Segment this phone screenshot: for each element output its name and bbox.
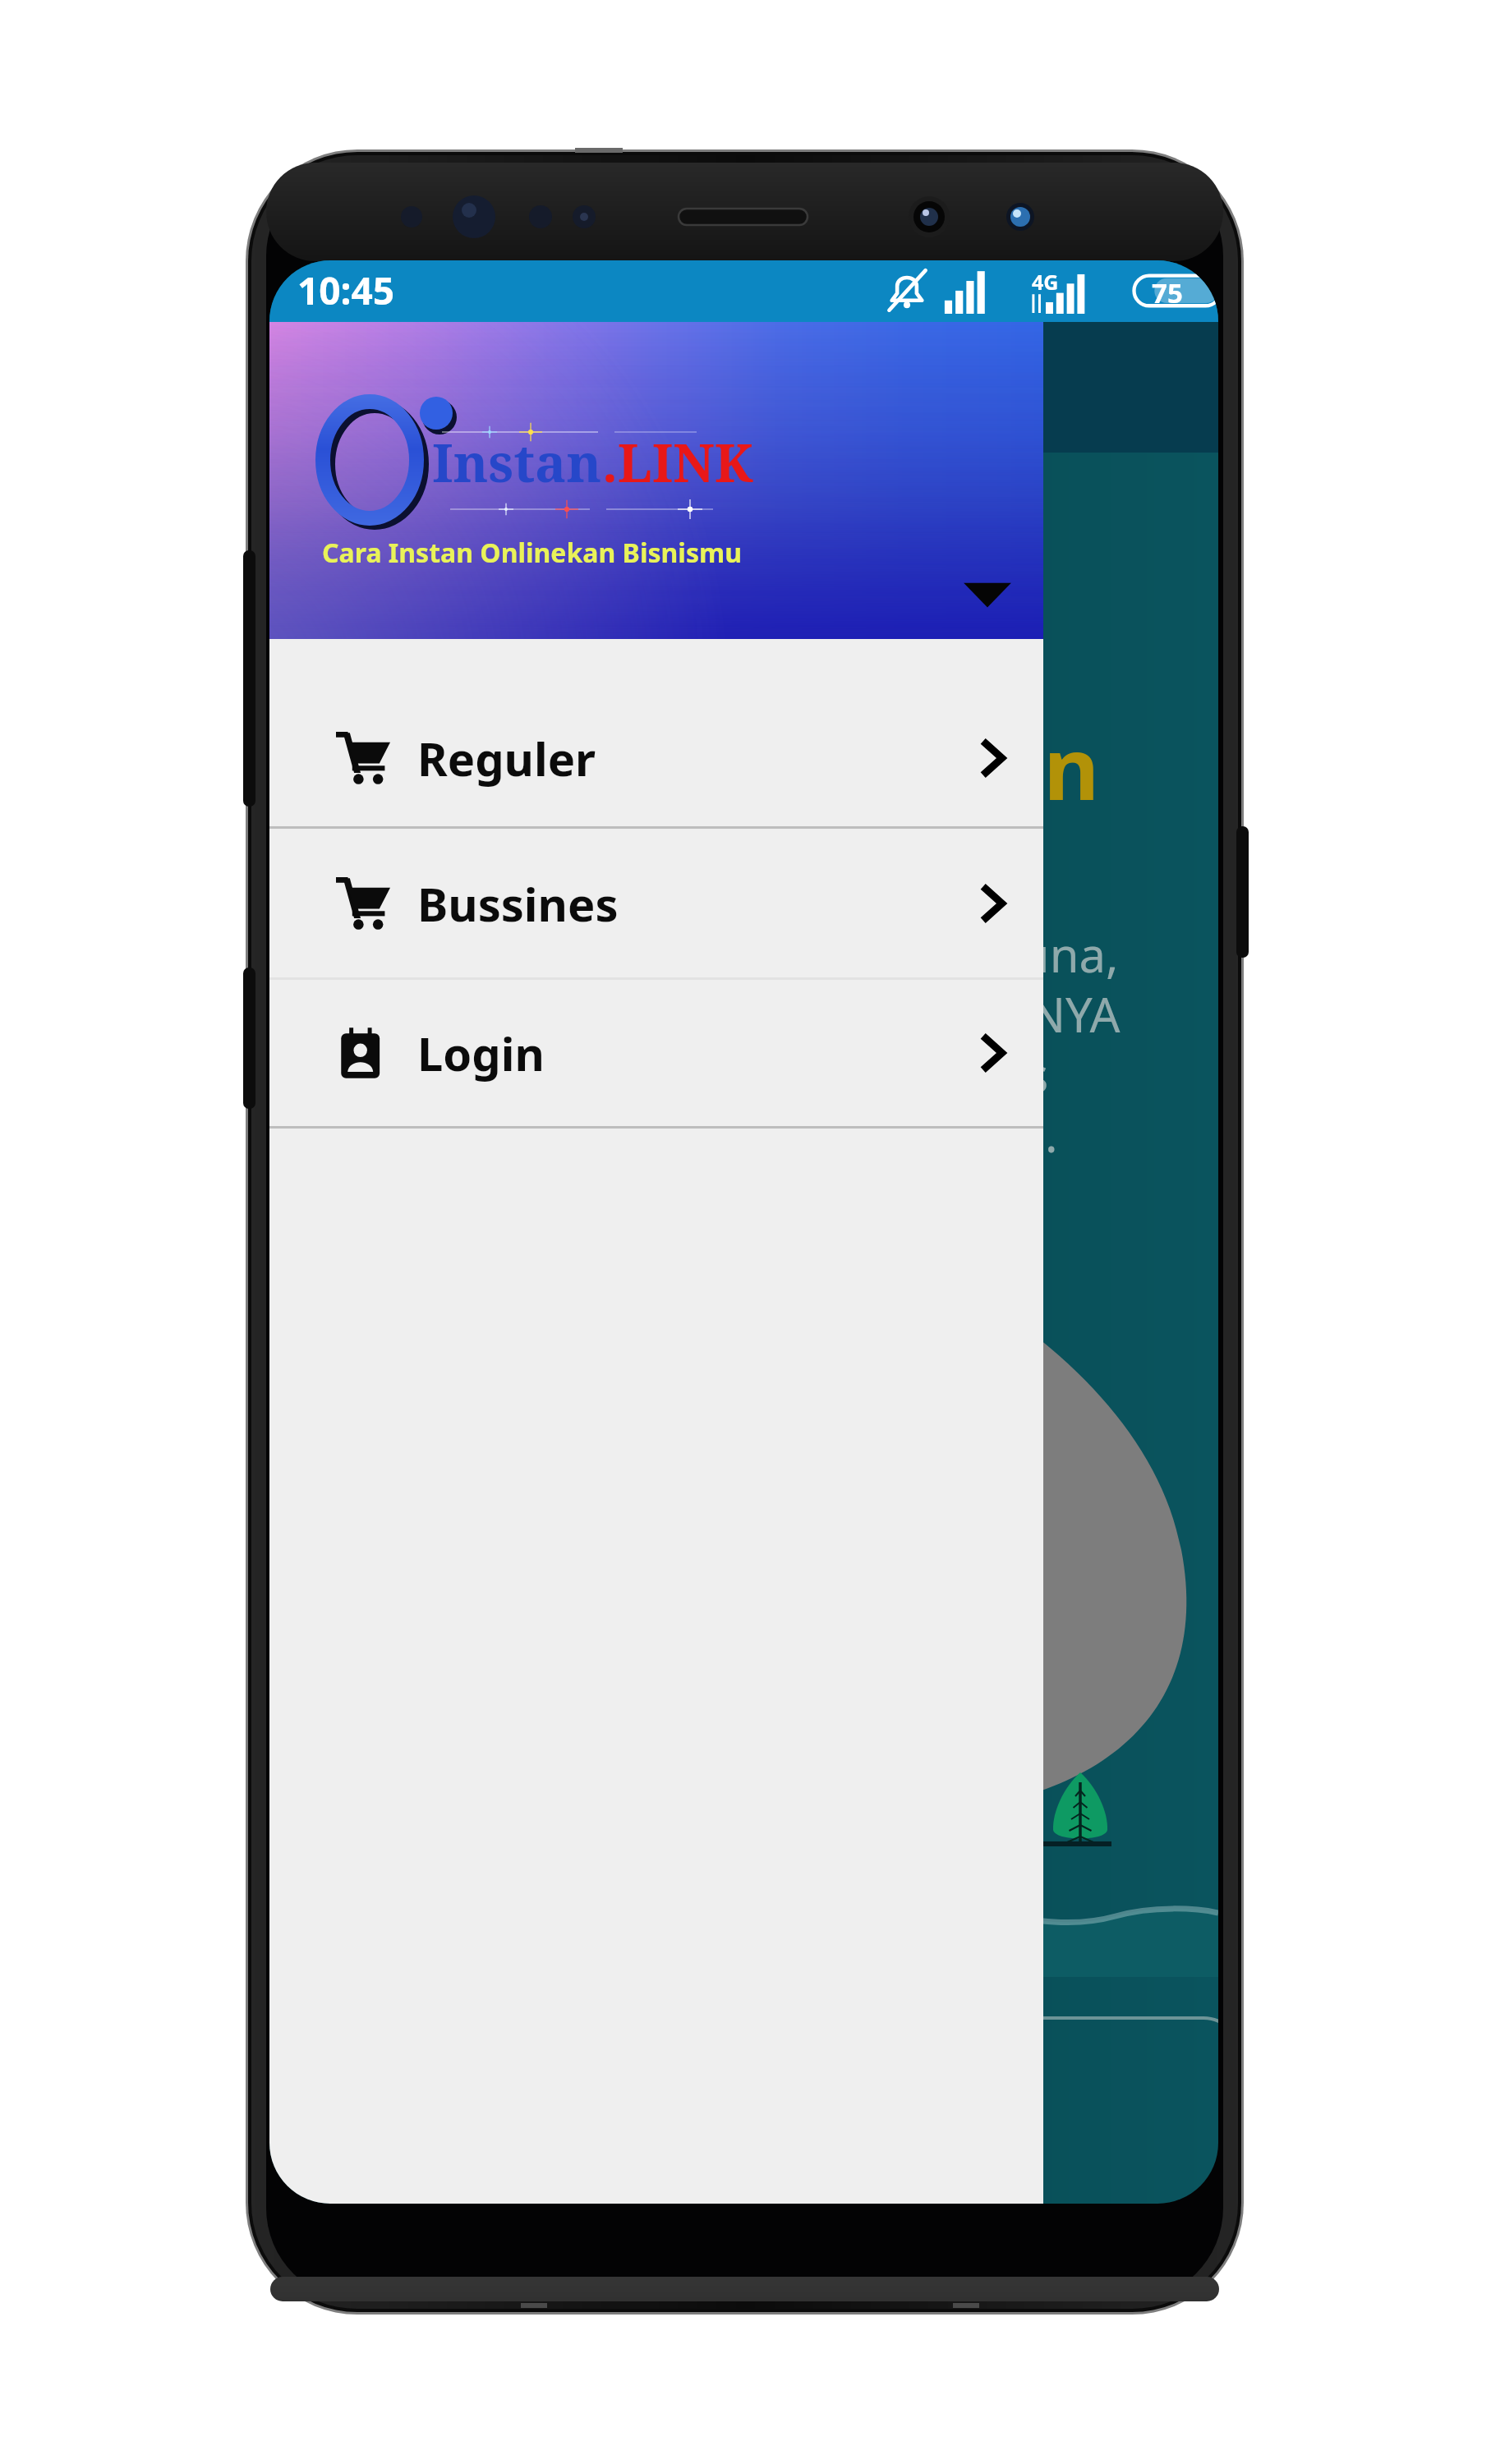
button[interactable]: Reguler	[269, 690, 1043, 826]
staticText: Login	[417, 1022, 545, 1084]
button[interactable]: Expand account list	[956, 562, 1019, 624]
button[interactable]: Bussines	[269, 829, 1043, 977]
staticText: .LINK	[602, 426, 753, 498]
button[interactable]: Login	[269, 980, 1043, 1126]
staticText: 4G	[1032, 268, 1059, 296]
staticText: Selamat Datang di Instan	[286, 605, 1202, 825]
staticText: Instan	[432, 426, 602, 498]
staticText: Reguler	[417, 727, 596, 789]
staticText: Cara Instan Onlinekan Bisnismu	[322, 535, 742, 571]
staticText: 10:45	[297, 264, 395, 316]
staticText: 75	[1152, 274, 1183, 311]
staticText: Solusi Website Instan Multi Guna, Bisa D…	[278, 922, 1210, 1166]
staticText: Bussines	[417, 872, 619, 935]
